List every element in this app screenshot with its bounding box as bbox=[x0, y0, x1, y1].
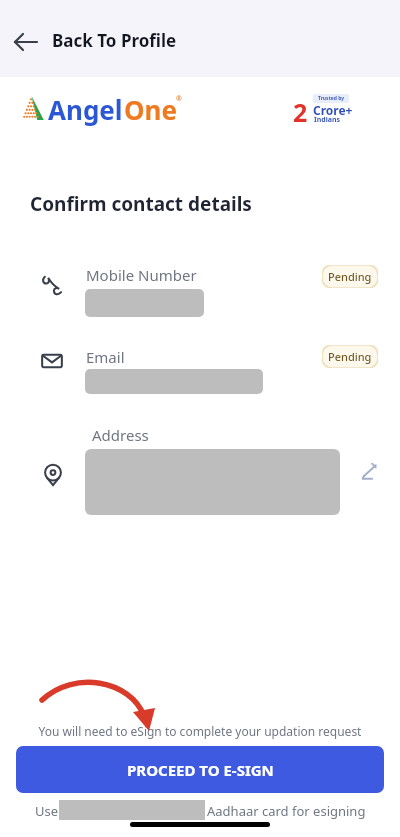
staticText: Aadhaar card for esigning bbox=[207, 802, 366, 820]
staticText: Crore+ bbox=[313, 102, 353, 118]
staticText: Use bbox=[35, 802, 59, 820]
staticText: Back To Profile bbox=[52, 29, 177, 52]
staticText: Pending bbox=[328, 349, 372, 364]
button[interactable]: Pending bbox=[322, 345, 378, 368]
button[interactable]: Back bbox=[8, 24, 44, 60]
other: Email bbox=[40, 349, 64, 373]
staticText: Indians bbox=[314, 115, 341, 125]
staticText: You will need to eSign to complete your … bbox=[0, 723, 400, 741]
staticText: Email bbox=[86, 347, 125, 367]
staticText: One bbox=[124, 92, 177, 126]
staticText: PROCEED TO E-SIGN bbox=[127, 760, 274, 780]
staticText: 2 bbox=[293, 95, 308, 125]
staticText: Mobile Number bbox=[86, 265, 197, 285]
staticText: Address bbox=[92, 425, 149, 445]
staticText: Trusted by bbox=[318, 95, 345, 102]
staticText: Confirm contact details bbox=[30, 191, 252, 217]
button[interactable]: PROCEED TO E-SIGN bbox=[16, 746, 384, 793]
other: Address bbox=[41, 463, 65, 487]
staticText: Pending bbox=[328, 269, 372, 284]
staticText: ® bbox=[176, 94, 182, 104]
other: Mobile number bbox=[40, 273, 64, 297]
button[interactable]: Pending bbox=[322, 265, 378, 288]
button[interactable]: Edit address bbox=[356, 459, 382, 485]
staticText: Angel bbox=[48, 92, 123, 126]
